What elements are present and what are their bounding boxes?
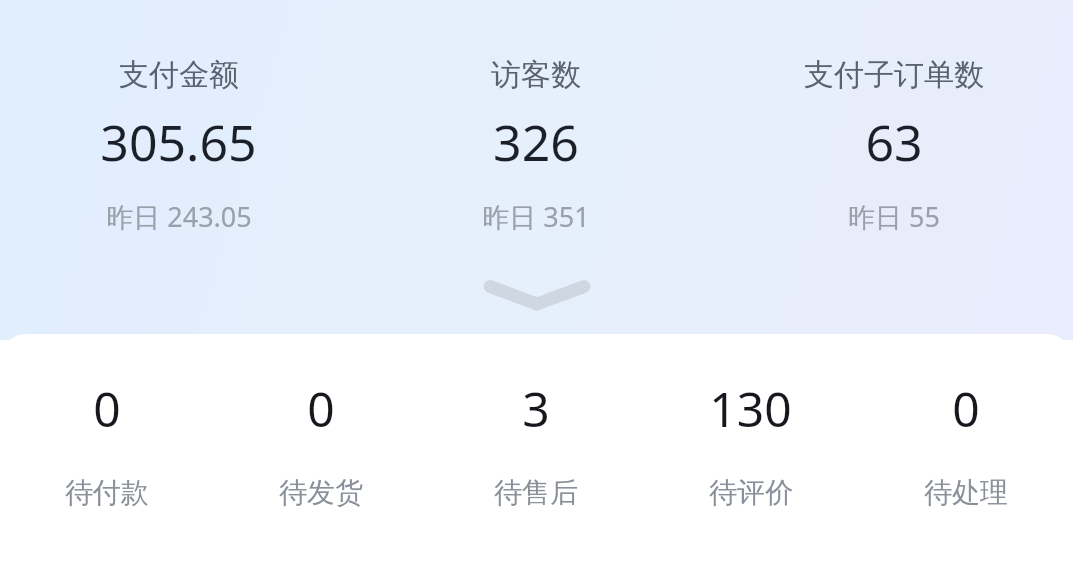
button[interactable]: 访客数 [357,56,715,235]
staticText: 待评价 [709,475,793,510]
staticText: 待售后 [494,475,578,510]
staticText: 昨日 243.05 [106,198,252,235]
staticText: 63 [865,108,923,176]
button[interactable]: 0 [214,376,428,510]
button[interactable]: 支付金额 [0,56,357,235]
button[interactable]: 0 [0,376,214,510]
staticText: 昨日 55 [848,198,940,235]
staticText: 305.65 [100,108,257,176]
button[interactable]: 0 [858,376,1073,510]
staticText: 支付金额 [119,56,239,94]
staticText: 3 [522,376,550,441]
button[interactable]: 130 [643,376,858,510]
button[interactable]: 展开 [477,272,597,318]
staticText: 待发货 [279,475,363,510]
button[interactable]: 支付子订单数 [715,56,1073,235]
staticText: 326 [493,108,579,176]
staticText: 昨日 351 [482,198,590,235]
staticText: 待处理 [924,475,1008,510]
staticText: 访客数 [491,56,581,94]
staticText: 0 [93,376,121,441]
staticText: 130 [709,376,792,441]
button[interactable]: 3 [428,376,643,510]
staticText: 待付款 [65,475,149,510]
staticText: 0 [307,376,335,441]
staticText: 支付子订单数 [804,56,984,94]
staticText: 0 [952,376,980,441]
